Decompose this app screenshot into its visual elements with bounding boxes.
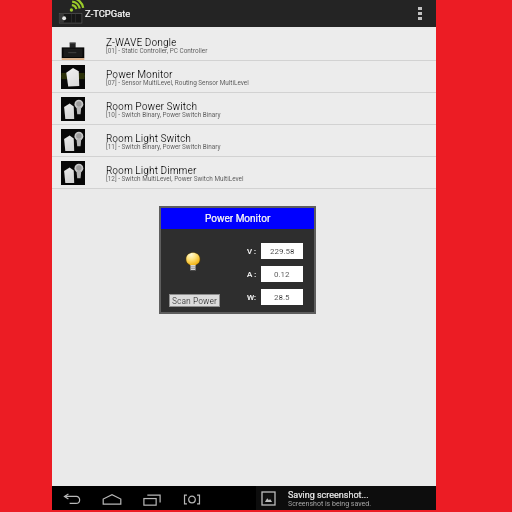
- staticText: [07] - Sensor MultiLevel, Routing Sensor…: [106, 79, 249, 87]
- staticText: 0.12: [274, 270, 290, 279]
- staticText: Power Monitor: [106, 69, 173, 81]
- staticText: Scan Power: [172, 296, 217, 306]
- staticText: Room Power Switch: [106, 101, 198, 113]
- staticText: Z-WAVE Dongle: [106, 37, 177, 49]
- button[interactable]: Room Light Switch: [52, 125, 436, 156]
- button[interactable]: Room Power Switch: [52, 93, 436, 124]
- button[interactable]: Home: [100, 488, 123, 511]
- staticText: 229.58: [270, 247, 295, 256]
- staticText: 28.5: [274, 293, 290, 302]
- button[interactable]: Scan Power: [170, 295, 219, 306]
- staticText: V :: [247, 247, 257, 256]
- staticText: Room Light Dimmer: [106, 165, 197, 177]
- staticText: [11] - Switch Binary, Power Switch Binar…: [106, 143, 221, 151]
- staticText: Z-TCPGate: [85, 8, 131, 19]
- staticText: [01] - Static Controller, PC Controller: [106, 47, 208, 55]
- staticText: W:: [247, 293, 257, 302]
- button[interactable]: Recent apps: [140, 488, 163, 511]
- staticText: [12] - Switch MultiLevel, Power Switch M…: [106, 175, 244, 183]
- button[interactable]: More options: [409, 0, 436, 27]
- staticText: Room Light Switch: [106, 133, 191, 145]
- button[interactable]: Power Monitor: [52, 61, 436, 92]
- button[interactable]: Back: [60, 488, 83, 511]
- staticText: Saving screenshot...: [288, 490, 369, 501]
- button[interactable]: Z-WAVE Dongle: [52, 29, 436, 60]
- staticText: Power Monitor: [205, 213, 271, 225]
- staticText: A :: [247, 270, 257, 279]
- button[interactable]: Room Light Dimmer: [52, 157, 436, 188]
- staticText: [10] - Switch Binary, Power Switch Binar…: [106, 111, 221, 119]
- button[interactable]: Screenshot: [180, 488, 203, 511]
- staticText: Screenshot is being saved.: [288, 500, 372, 508]
